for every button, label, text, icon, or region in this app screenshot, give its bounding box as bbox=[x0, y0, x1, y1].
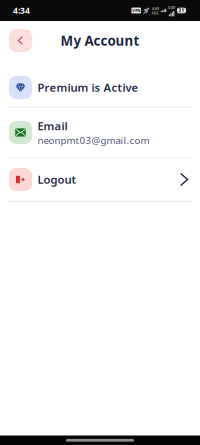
staticText: KB/S bbox=[152, 11, 159, 15]
button[interactable]: Email bbox=[0, 108, 200, 157]
staticText: 0.00 bbox=[168, 5, 175, 10]
staticText: 4.60 bbox=[152, 5, 159, 11]
staticText: 21 bbox=[178, 7, 184, 14]
staticText: Email bbox=[37, 118, 67, 133]
button[interactable]: Premium is Active bbox=[0, 68, 200, 107]
staticText: 4:34 bbox=[13, 5, 30, 16]
staticText: Logout bbox=[37, 172, 76, 187]
staticText: Premium is Active bbox=[37, 80, 138, 95]
staticText: My Account bbox=[60, 32, 139, 49]
staticText: VPN bbox=[132, 8, 140, 13]
staticText: neonpmt03@gmail.com bbox=[37, 133, 149, 147]
button[interactable]: Logout bbox=[0, 158, 200, 201]
button[interactable]: Back bbox=[9, 29, 32, 52]
